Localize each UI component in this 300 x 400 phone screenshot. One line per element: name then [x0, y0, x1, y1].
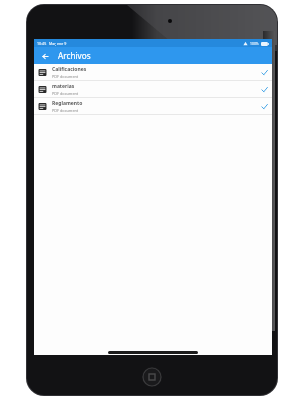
- button[interactable]: Back: [39, 50, 51, 62]
- staticText: 100%: [250, 41, 259, 46]
- staticText: 10:45: [37, 41, 47, 46]
- staticText: PDF document: [52, 91, 79, 96]
- staticText: Archivos: [58, 50, 91, 61]
- staticText: Reglamento: [52, 100, 83, 107]
- staticText: Mar, ene 9: [49, 41, 67, 46]
- staticText: materias: [52, 83, 75, 90]
- button[interactable]: Reglamento: [34, 98, 272, 114]
- staticText: PDF document: [52, 74, 79, 79]
- other: Downloaded: [261, 103, 268, 110]
- other: Downloaded: [261, 69, 268, 76]
- button[interactable]: materias: [34, 81, 272, 97]
- button[interactable]: Home: [142, 367, 162, 387]
- button[interactable]: Calificaciones: [34, 64, 272, 80]
- other: Downloaded: [261, 86, 268, 93]
- staticText: Calificaciones: [52, 66, 87, 73]
- staticText: PDF document: [52, 108, 79, 113]
